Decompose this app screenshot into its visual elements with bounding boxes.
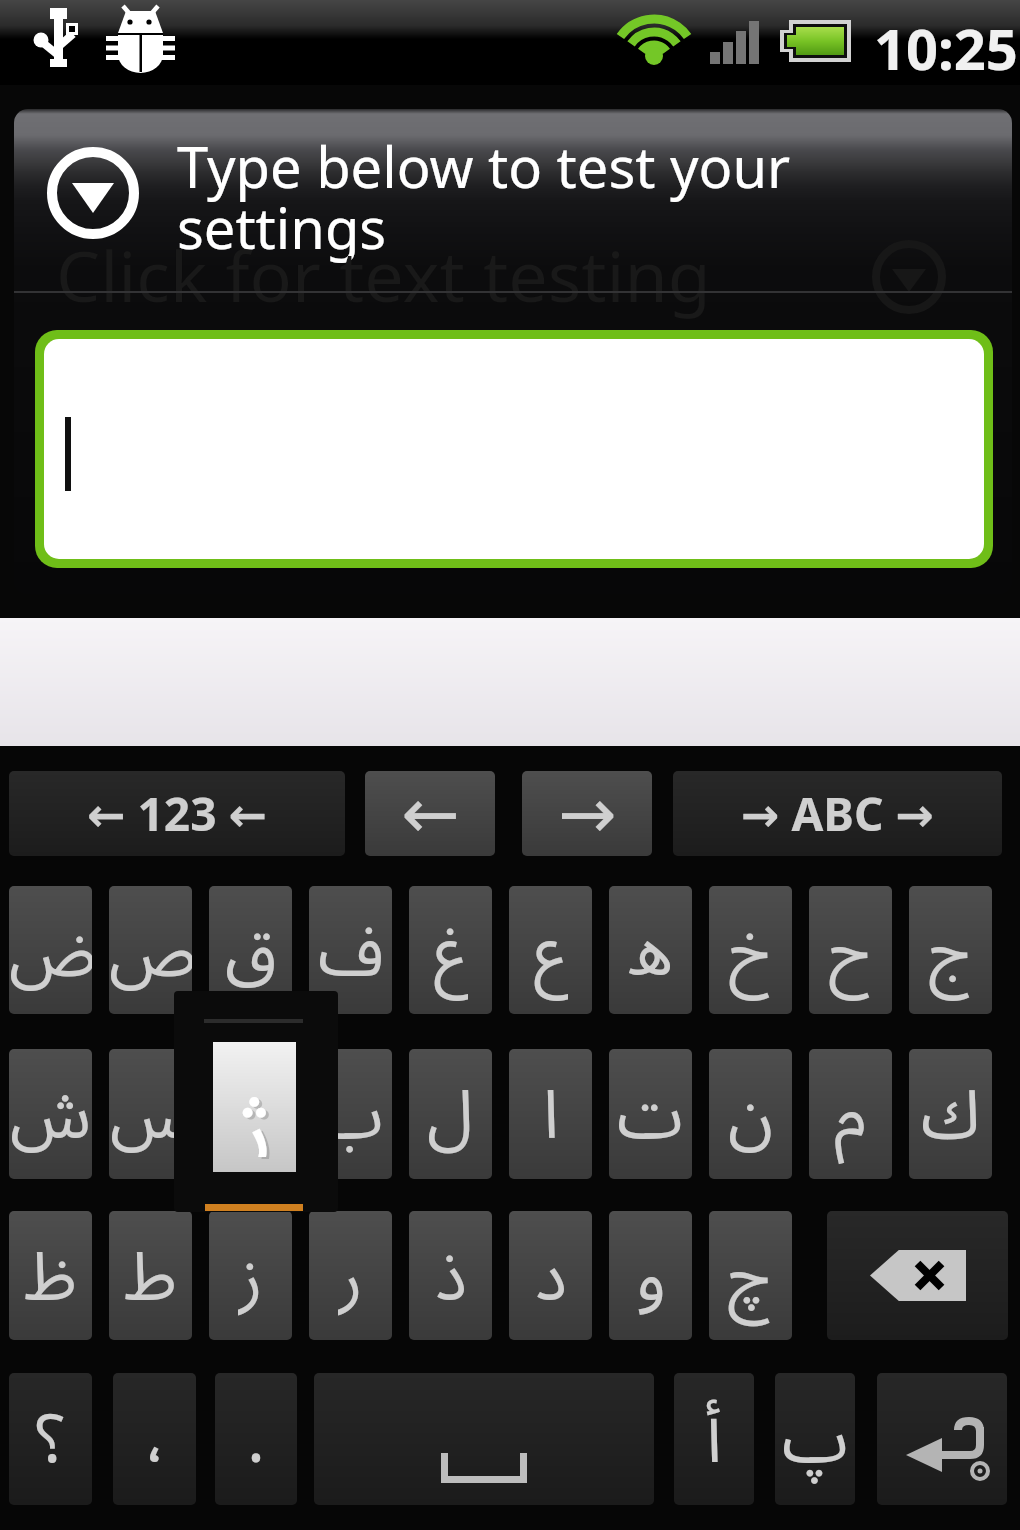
staticText: پ: [782, 1373, 849, 1502]
staticText: ض: [9, 886, 92, 1011]
staticText: ص: [109, 886, 192, 1011]
button[interactable]: ف: [309, 886, 392, 1014]
staticText: ط: [124, 1211, 177, 1337]
staticText: ا: [543, 1049, 559, 1176]
staticText: و: [636, 1211, 666, 1337]
button[interactable]: ب: [309, 1049, 392, 1179]
staticText: ذ: [435, 1211, 467, 1337]
button[interactable]: د: [509, 1211, 592, 1340]
staticText: ظ: [24, 1211, 77, 1337]
button[interactable]: ،: [113, 1373, 196, 1505]
staticText: ،: [144, 1373, 166, 1502]
staticText: ژ: [238, 1049, 263, 1176]
staticText: → ABC →: [741, 782, 934, 845]
button[interactable]: [44, 339, 984, 559]
staticText: Type below to test your settings: [177, 128, 817, 265]
button[interactable]: .: [215, 1373, 297, 1505]
staticText: س: [110, 1049, 192, 1176]
staticText: ر: [338, 1211, 363, 1337]
staticText: ز: [238, 1211, 263, 1337]
button[interactable]: خ: [709, 886, 792, 1014]
button[interactable]: ل: [409, 1049, 492, 1179]
button[interactable]: ر: [309, 1211, 392, 1340]
button[interactable]: ط: [109, 1211, 192, 1340]
staticText: ج: [929, 886, 972, 1011]
button[interactable]: ه: [609, 886, 692, 1014]
button[interactable]: ص: [109, 886, 192, 1014]
staticText: ←: [401, 773, 460, 854]
staticText: ← 123 ←: [87, 782, 267, 845]
staticText: ف: [318, 886, 384, 1011]
staticText: Click for text testing: [56, 227, 711, 322]
button[interactable]: أ: [674, 1373, 754, 1505]
staticText: ژ: [240, 1029, 276, 1159]
button[interactable]: ق: [209, 886, 292, 1014]
staticText: .: [247, 1373, 265, 1502]
button[interactable]: Latin letters: [673, 771, 1002, 856]
button[interactable]: ظ: [9, 1211, 92, 1340]
staticText: ب: [317, 1049, 384, 1176]
staticText: ل: [427, 1049, 474, 1176]
button[interactable]: ك: [909, 1049, 992, 1179]
button[interactable]: Numbers: [9, 771, 345, 856]
staticText: چ: [728, 1211, 773, 1337]
staticText: ن: [728, 1049, 774, 1176]
staticText: غ: [434, 886, 468, 1011]
button[interactable]: Backspace: [827, 1211, 1008, 1340]
staticText: م: [834, 1049, 867, 1176]
button[interactable]: ت: [609, 1049, 692, 1179]
staticText: خ: [729, 886, 772, 1011]
button[interactable]: ؟: [9, 1373, 92, 1505]
staticText: →: [558, 773, 617, 854]
button[interactable]: ج: [909, 886, 992, 1014]
button[interactable]: Space: [314, 1373, 654, 1505]
staticText: ق: [225, 886, 277, 1011]
button[interactable]: ح: [809, 886, 892, 1014]
button[interactable]: ژ: [209, 1049, 292, 1179]
button[interactable]: پ: [775, 1373, 855, 1505]
button[interactable]: ن: [709, 1049, 792, 1179]
button[interactable]: و: [609, 1211, 692, 1340]
staticText: ح: [829, 886, 872, 1011]
staticText: ش: [10, 1049, 92, 1176]
button[interactable]: غ: [409, 886, 492, 1014]
staticText: 10:25: [874, 10, 1018, 86]
staticText: أ: [706, 1373, 722, 1502]
button[interactable]: Enter: [877, 1373, 1007, 1505]
button[interactable]: Move cursor right: [522, 771, 652, 856]
button[interactable]: ض: [9, 886, 92, 1014]
button[interactable]: ا: [509, 1049, 592, 1179]
button[interactable]: Move cursor left: [365, 771, 495, 856]
button[interactable]: ع: [509, 886, 592, 1014]
button[interactable]: ش: [9, 1049, 92, 1179]
staticText: ك: [921, 1049, 981, 1176]
button[interactable]: س: [109, 1049, 192, 1179]
button[interactable]: ز: [209, 1211, 292, 1340]
staticText: ت: [617, 1049, 684, 1176]
button[interactable]: ذ: [409, 1211, 492, 1340]
staticText: ژ: [237, 1027, 273, 1157]
button[interactable]: م: [809, 1049, 892, 1179]
staticText: ع: [534, 886, 568, 1011]
staticText: ه: [628, 886, 674, 1011]
staticText: ؟: [36, 1373, 66, 1502]
staticText: د: [535, 1211, 567, 1337]
button[interactable]: چ: [709, 1211, 792, 1340]
